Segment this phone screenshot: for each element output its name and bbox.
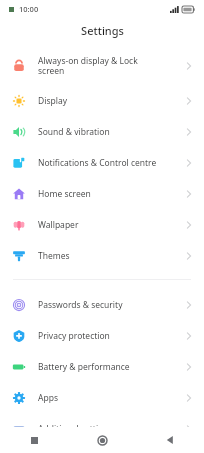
button[interactable]: Additional settings <box>0 413 204 427</box>
staticText: Sound & vibration <box>38 126 178 138</box>
staticText: 10:00 <box>19 4 39 14</box>
staticText: Passwords & security <box>38 299 178 311</box>
staticText: Settings <box>81 23 124 38</box>
staticText: Home screen <box>38 188 178 200</box>
staticText: Wallpaper <box>38 219 178 231</box>
staticText: Always-on display & Lock screen <box>38 55 178 77</box>
button[interactable]: Wallpaper <box>0 209 204 240</box>
button[interactable]: Recent apps <box>0 427 68 453</box>
button[interactable]: Display <box>0 85 204 116</box>
staticText: Apps <box>38 392 178 404</box>
button[interactable]: Passwords & security <box>0 289 204 320</box>
button[interactable]: Notifications & Control centre <box>0 147 204 178</box>
staticText: Themes <box>38 250 178 262</box>
staticText: Privacy protection <box>38 330 178 342</box>
button[interactable]: Home screen <box>0 178 204 209</box>
button[interactable]: Sound & vibration <box>0 116 204 147</box>
staticText: Additional settings <box>38 423 178 427</box>
staticText: Battery & performance <box>38 361 178 373</box>
staticText: Notifications & Control centre <box>38 157 178 169</box>
button[interactable]: Battery & performance <box>0 351 204 382</box>
button[interactable]: Home <box>68 427 136 453</box>
button[interactable]: Apps <box>0 382 204 413</box>
staticText: Display <box>38 95 178 107</box>
button[interactable]: Themes <box>0 240 204 271</box>
button[interactable]: Back <box>136 427 204 453</box>
button[interactable]: Always-on display & Lock screen <box>0 47 204 85</box>
button[interactable]: Privacy protection <box>0 320 204 351</box>
